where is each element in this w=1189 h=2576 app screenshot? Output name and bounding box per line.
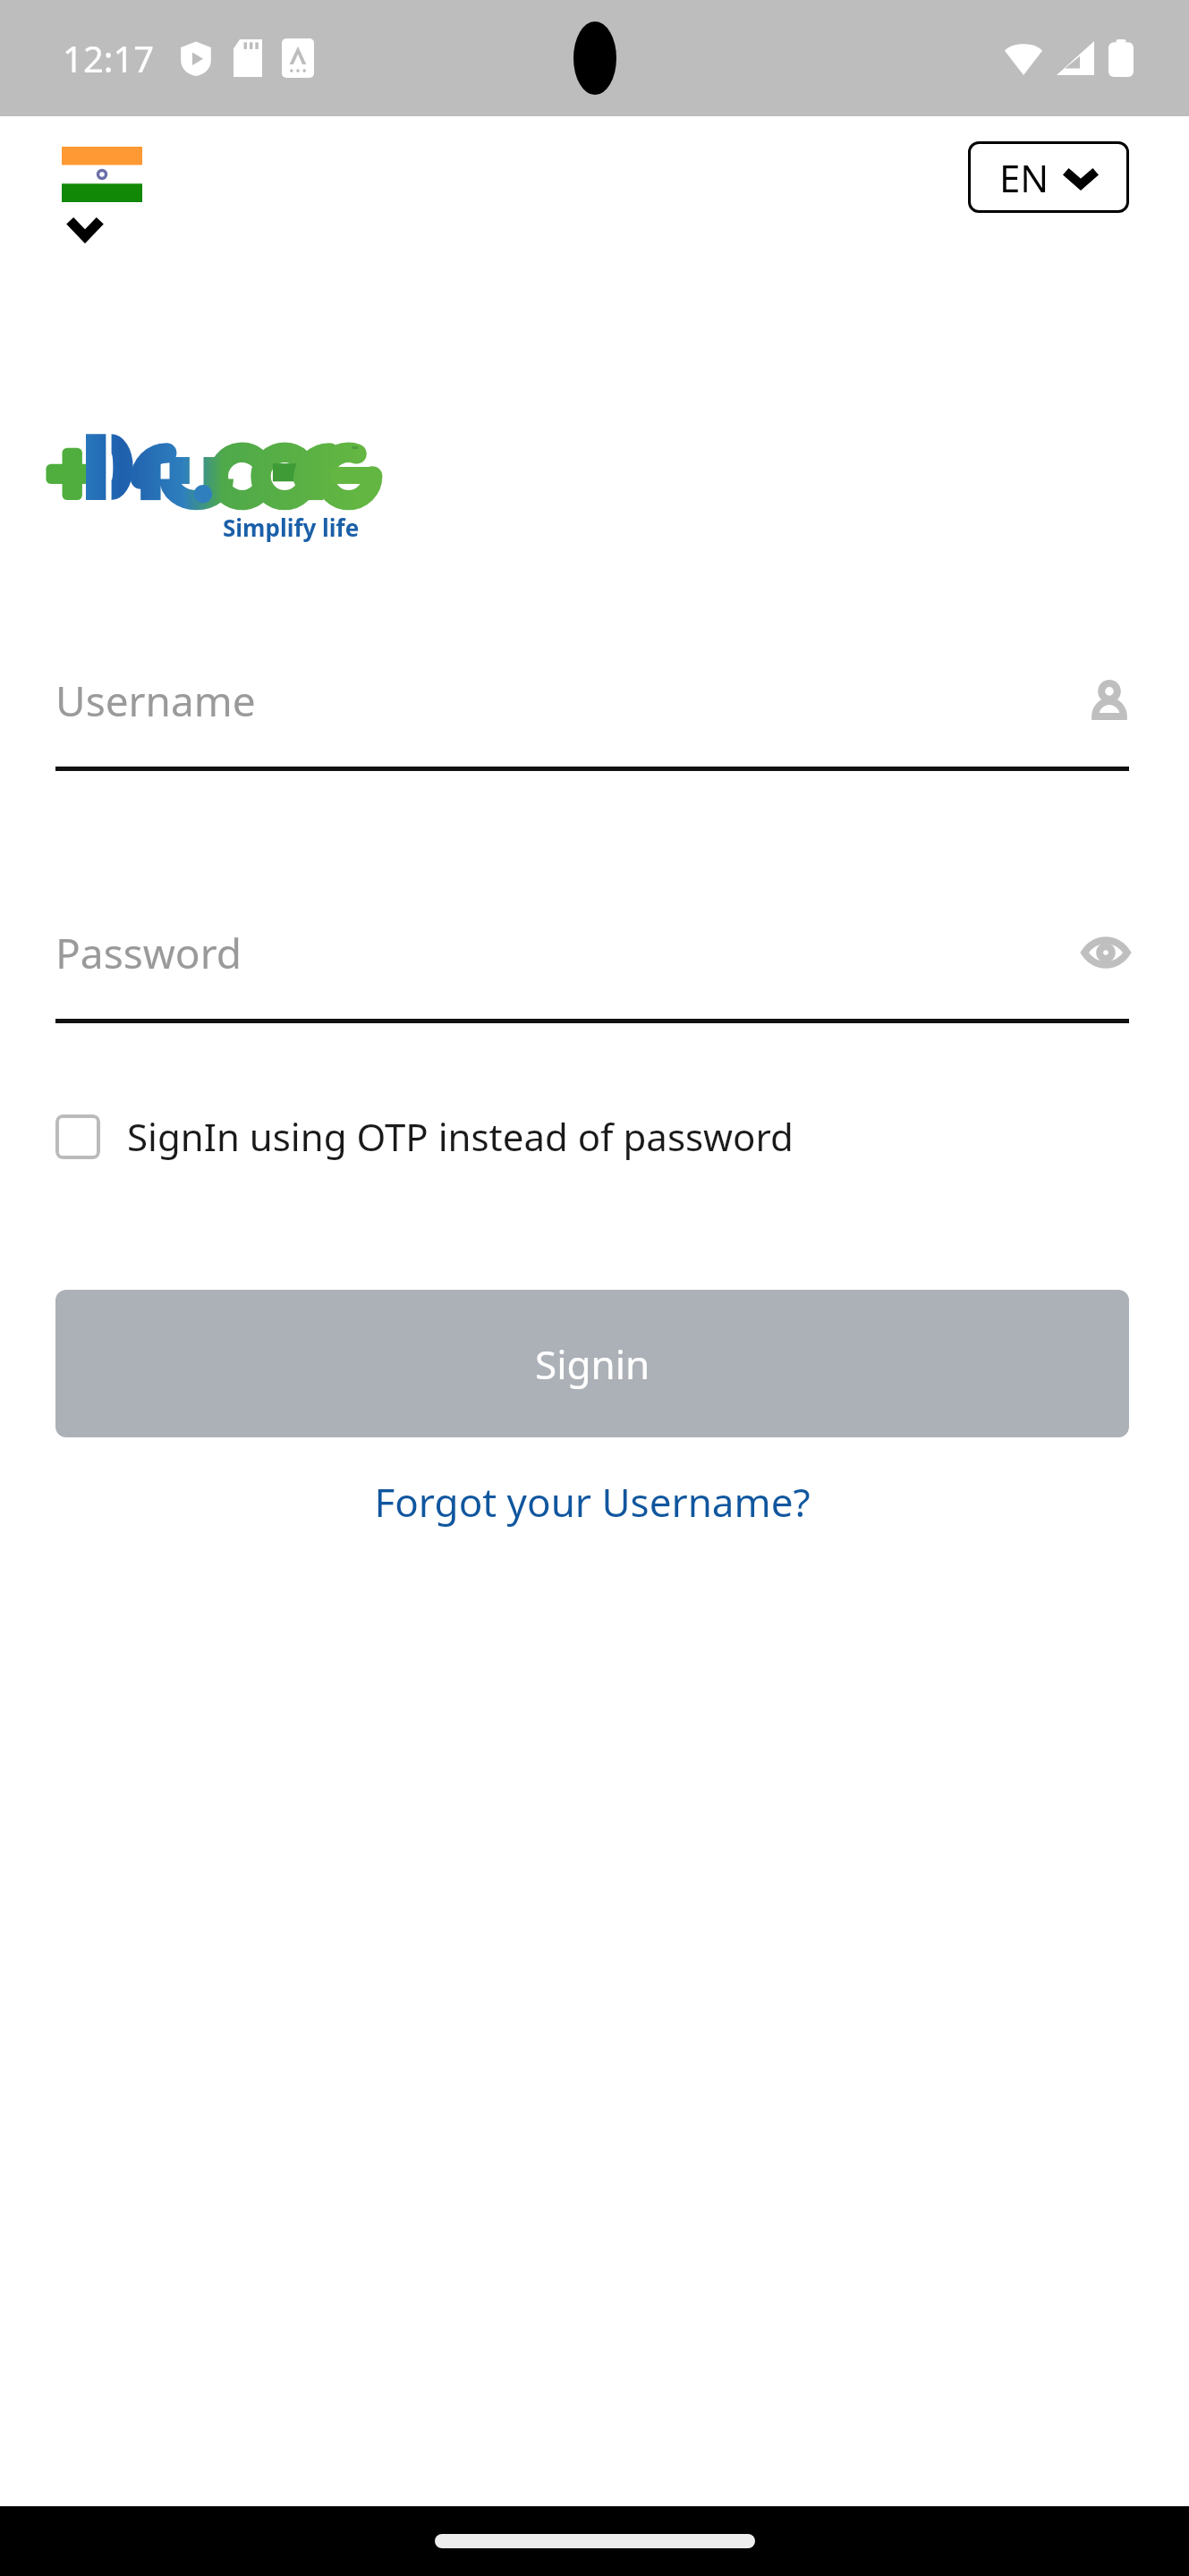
staticText: Signin bbox=[535, 1337, 650, 1391]
button[interactable]: SignIn using OTP instead of password bbox=[55, 1104, 1129, 1169]
button[interactable]: Forgot your Username? bbox=[55, 1475, 1129, 1529]
button[interactable]: EN bbox=[968, 141, 1129, 213]
staticText: SignIn using OTP instead of password bbox=[127, 1111, 794, 1162]
staticText: EN bbox=[999, 152, 1049, 203]
staticText: Simplify life bbox=[223, 512, 360, 543]
button[interactable]: Username bbox=[55, 657, 1129, 771]
button[interactable]: Password bbox=[55, 910, 1129, 1023]
button[interactable]: Select country bbox=[58, 143, 146, 243]
staticText: Username bbox=[55, 673, 1090, 729]
staticText: Password bbox=[55, 925, 1083, 981]
staticText: Forgot your Username? bbox=[374, 1475, 811, 1529]
staticText: 12:17 bbox=[63, 34, 155, 82]
button[interactable]: Signin bbox=[55, 1290, 1129, 1437]
